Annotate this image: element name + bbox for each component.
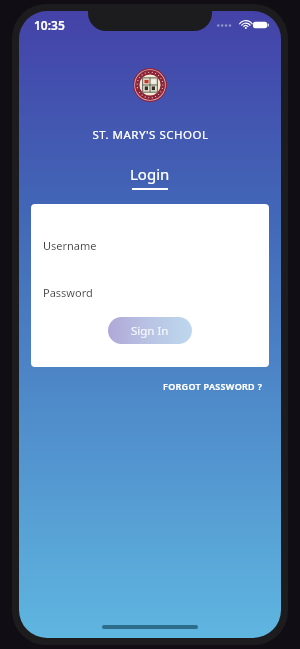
staticText: Username — [43, 238, 97, 253]
button[interactable]: Login — [130, 164, 170, 190]
button[interactable]: Password — [31, 277, 269, 307]
button[interactable]: FORGOT PASSWORD ? — [161, 377, 265, 395]
staticText: Login — [130, 164, 170, 184]
staticText: ST. MARY'S SCHOOL — [92, 127, 209, 143]
staticText: Sign In — [131, 323, 169, 339]
button[interactable]: Sign In — [108, 317, 192, 344]
button[interactable]: Username — [31, 230, 269, 260]
staticText: Password — [43, 285, 93, 300]
staticText: FORGOT PASSWORD ? — [163, 380, 263, 392]
staticText: 10:35 — [34, 17, 65, 33]
